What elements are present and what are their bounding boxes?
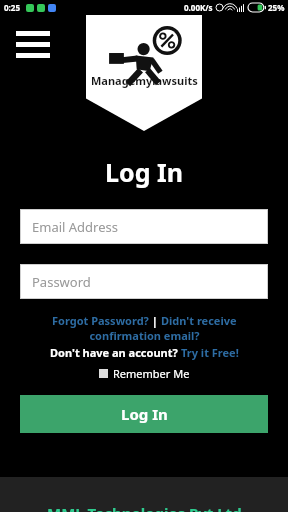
button[interactable]: Didn't receive — [161, 313, 237, 328]
staticText: Password — [32, 273, 91, 291]
staticText: Managemylawsuits — [91, 73, 198, 88]
staticText: Log In — [0, 155, 288, 189]
button[interactable]: Log In — [20, 395, 268, 433]
button[interactable]: Forgot Password? — [52, 313, 149, 328]
staticText: Remember Me — [113, 366, 190, 381]
button[interactable]: Password — [21, 265, 267, 298]
staticText: Don't have an account? — [50, 345, 181, 360]
button[interactable]: Email Address — [21, 210, 267, 243]
button[interactable]: confirmation email? — [89, 328, 200, 343]
staticText: MML Technologies Pvt Ltd — [47, 503, 242, 512]
staticText: 25% — [268, 2, 285, 13]
button[interactable]: Try it Free! — [181, 345, 239, 360]
staticText: Email Address — [32, 218, 118, 236]
staticText: 0.00K/s — [184, 2, 213, 13]
staticText: Log In — [121, 404, 168, 424]
button[interactable]: Menu — [12, 27, 54, 62]
staticText: 0:25 — [4, 2, 20, 13]
staticText: | — [149, 313, 161, 328]
button[interactable]: Remember Me — [99, 366, 190, 381]
